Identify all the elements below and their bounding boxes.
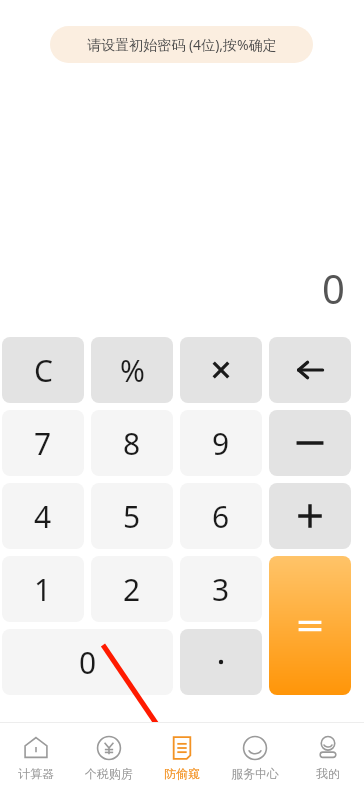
staticText: 防偷窥 <box>164 766 200 781</box>
button[interactable]: 6 <box>180 483 262 549</box>
button[interactable]: Backspace <box>269 337 351 403</box>
button[interactable]: 4 <box>2 483 84 549</box>
button[interactable]: Multiply <box>180 337 262 403</box>
staticText: 7 <box>34 423 52 464</box>
staticText: 1 <box>34 569 52 610</box>
button[interactable]: 8 <box>91 410 173 476</box>
staticText: % <box>120 350 145 391</box>
staticText: 计算器 <box>18 766 54 781</box>
button[interactable]: 我的 <box>291 723 364 793</box>
button[interactable]: 9 <box>180 410 262 476</box>
button[interactable]: 1 <box>2 556 84 622</box>
staticText: 3 <box>212 569 230 610</box>
button[interactable]: Plus <box>269 483 351 549</box>
staticText: 5 <box>123 496 141 537</box>
staticText: C <box>34 350 53 391</box>
button[interactable]: C <box>2 337 84 403</box>
button[interactable]: 2 <box>91 556 173 622</box>
staticText: 8 <box>123 423 141 464</box>
button[interactable]: Minus <box>269 410 351 476</box>
button[interactable]: % <box>91 337 173 403</box>
staticText: 我的 <box>316 766 340 781</box>
button[interactable]: 3 <box>180 556 262 622</box>
staticText: 0 <box>322 261 345 315</box>
button[interactable]: 服务中心 <box>218 723 291 793</box>
button[interactable]: 7 <box>2 410 84 476</box>
button[interactable]: Decimal point <box>180 629 262 695</box>
staticText: 4 <box>34 496 52 537</box>
staticText: 服务中心 <box>231 766 279 781</box>
staticText: 6 <box>212 496 230 537</box>
button[interactable]: Equals <box>269 556 351 695</box>
button[interactable]: 个税购房 <box>72 723 145 793</box>
staticText: 0 <box>79 642 97 683</box>
button[interactable]: 计算器 <box>0 723 72 793</box>
staticText: 个税购房 <box>85 766 133 781</box>
button[interactable]: 防偷窥 <box>145 723 218 793</box>
button[interactable]: 请设置初始密码 (4位),按%确定 <box>50 26 313 63</box>
staticText: 9 <box>212 423 230 464</box>
button[interactable]: 0 <box>2 629 173 695</box>
staticText: 2 <box>123 569 141 610</box>
button[interactable]: 5 <box>91 483 173 549</box>
staticText: 请设置初始密码 (4位),按%确定 <box>87 35 277 54</box>
